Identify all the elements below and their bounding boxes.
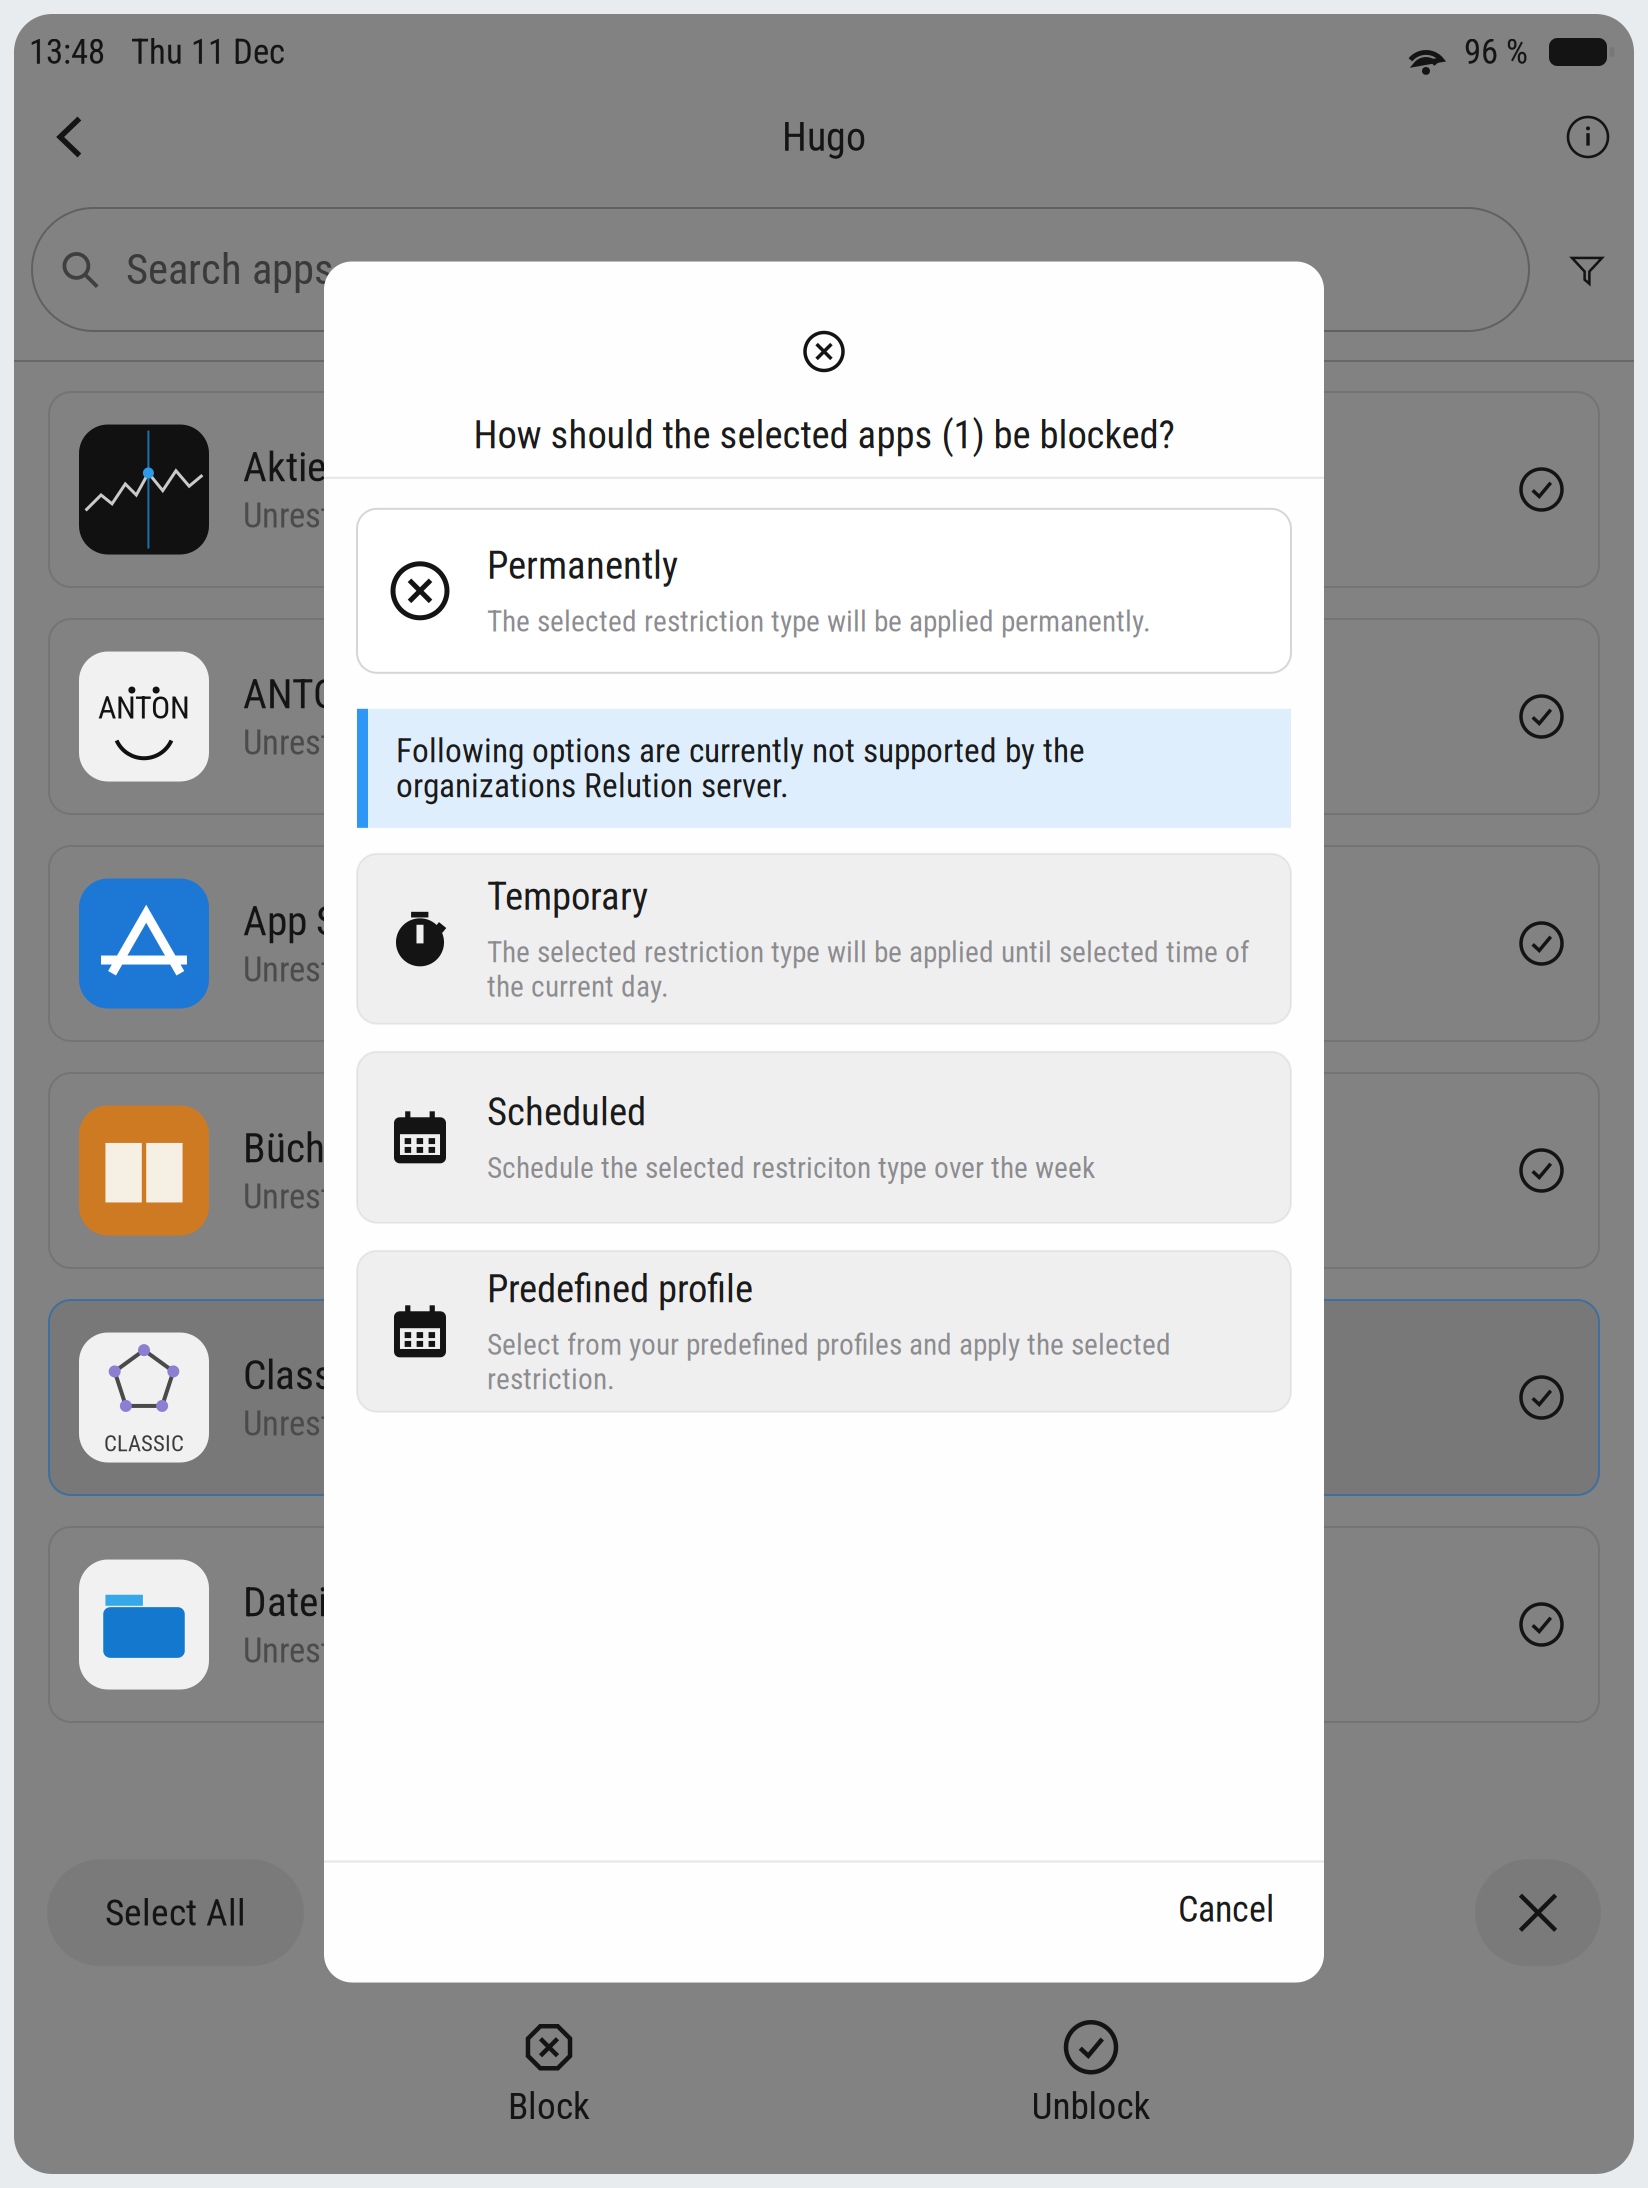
staticText: Select from your predefined profiles and… bbox=[487, 1328, 1171, 1396]
staticText: Unrestricted bbox=[243, 722, 409, 763]
staticText: Unrestricted bbox=[243, 1403, 409, 1444]
button[interactable]: Bücher bbox=[49, 1073, 1599, 1268]
staticText: ANTON bbox=[98, 689, 190, 726]
button[interactable]: Predefined profile bbox=[357, 1251, 1291, 1412]
staticText: Scheduled bbox=[487, 1089, 646, 1135]
staticText: Classic bbox=[243, 1351, 361, 1399]
button[interactable]: Cancel bbox=[1161, 1863, 1291, 1982]
button[interactable]: Info bbox=[1546, 95, 1630, 179]
staticText: Aktien bbox=[243, 443, 346, 491]
staticText: Cancel bbox=[1178, 1888, 1274, 1931]
staticText: Select All bbox=[105, 1891, 246, 1935]
staticText: ANTON bbox=[243, 670, 364, 718]
staticText: The selected restriction type will be ap… bbox=[487, 604, 1151, 639]
button[interactable]: Dateien bbox=[49, 1527, 1599, 1722]
staticText: Search apps... bbox=[126, 244, 366, 294]
button[interactable]: App Store bbox=[49, 846, 1599, 1041]
staticText: Schedule the selected restriciton type o… bbox=[487, 1151, 1095, 1185]
button[interactable]: Temporary bbox=[357, 854, 1291, 1024]
button[interactable]: Scheduled bbox=[357, 1052, 1291, 1223]
staticText: Unrestricted bbox=[243, 495, 409, 536]
button[interactable]: Permanently bbox=[357, 509, 1291, 673]
button[interactable]: Back bbox=[26, 92, 116, 182]
staticText: The selected restriction type will be ap… bbox=[487, 935, 1249, 1004]
staticText: Following options are currently not supp… bbox=[396, 731, 1085, 770]
staticText: Unrestricted bbox=[243, 949, 409, 990]
staticText: Block bbox=[508, 2084, 590, 2128]
button[interactable]: Block bbox=[414, 2022, 684, 2128]
staticText: Unrestricted bbox=[243, 1176, 409, 1217]
staticText: 96 % bbox=[1464, 32, 1528, 72]
button[interactable]: Close bbox=[1475, 1859, 1601, 1966]
button[interactable]: Unblock bbox=[956, 2022, 1226, 2128]
staticText: App Store bbox=[243, 897, 401, 945]
staticText: How should the selected apps (1) be bloc… bbox=[473, 412, 1174, 458]
staticText: Thu 11 Dec bbox=[131, 32, 285, 72]
staticText: Unblock bbox=[1031, 2084, 1150, 2128]
staticText: Bücher bbox=[243, 1124, 357, 1172]
button[interactable]: Aktien bbox=[49, 392, 1599, 587]
button[interactable]: Filter bbox=[1555, 237, 1619, 301]
button[interactable]: Select All bbox=[47, 1859, 304, 1966]
staticText: Dateien bbox=[243, 1578, 366, 1626]
staticText: Unrestricted bbox=[243, 1630, 409, 1671]
button[interactable]: Close bbox=[805, 332, 843, 370]
staticText: Hugo bbox=[782, 114, 866, 160]
button[interactable]: ANTON bbox=[49, 619, 1599, 814]
staticText: Temporary bbox=[487, 874, 648, 919]
staticText: CLASSIC bbox=[104, 1430, 184, 1457]
staticText: organizations Relution server. bbox=[396, 766, 789, 805]
button[interactable]: CLASSIC bbox=[49, 1300, 1599, 1495]
staticText: Permanently bbox=[487, 543, 678, 588]
staticText: Predefined profile bbox=[487, 1266, 753, 1312]
staticText: 13:48 bbox=[29, 32, 105, 72]
